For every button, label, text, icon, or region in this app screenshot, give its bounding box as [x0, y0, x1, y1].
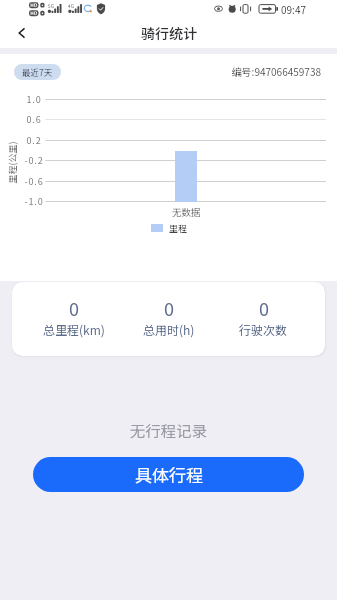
- staticText: -0.6: [21, 175, 47, 188]
- staticText: 无行程记录: [0, 419, 337, 441]
- staticText: 0: [259, 295, 269, 321]
- staticText: 骑行统计: [141, 23, 197, 43]
- staticText: 里程(公里): [5, 136, 18, 188]
- staticText: -1.0: [21, 195, 47, 208]
- button[interactable]: 具体行程: [33, 457, 304, 492]
- staticText: 0.6: [21, 113, 47, 126]
- staticText: 4G: [68, 2, 75, 9]
- button[interactable]: 最近7天: [14, 64, 61, 80]
- staticText: 09:47: [281, 2, 306, 16]
- staticText: 0: [164, 295, 174, 321]
- staticText: 无数据: [172, 205, 201, 219]
- staticText: 里程: [169, 222, 188, 235]
- button[interactable]: Back: [10, 21, 34, 45]
- staticText: 行驶次数: [239, 321, 288, 338]
- staticText: 0: [69, 295, 79, 321]
- staticText: 1.0: [21, 93, 47, 106]
- staticText: 0.2: [21, 134, 47, 147]
- staticText: 具体行程: [135, 462, 203, 487]
- staticText: 5G: [48, 2, 55, 9]
- staticText: -0.2: [21, 154, 47, 167]
- staticText: 编号:947066459738: [0, 64, 321, 78]
- staticText: 最近7天: [22, 66, 53, 78]
- staticText: 总里程(km): [43, 321, 105, 338]
- staticText: 总用时(h): [143, 321, 195, 338]
